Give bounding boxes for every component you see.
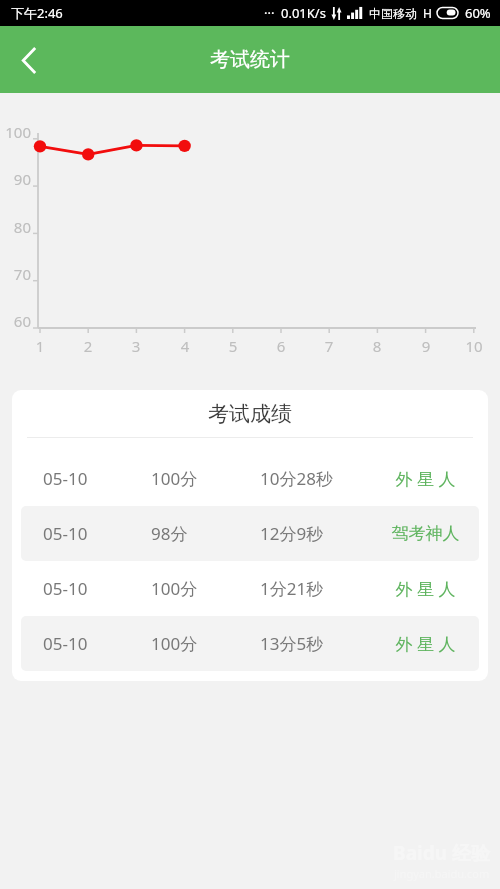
staticText: 10分28秒 [260,467,378,490]
staticText: 100分 [151,467,260,490]
staticText: 3 [121,336,151,356]
staticText: ··· [264,4,275,22]
staticText: 6 [266,336,296,356]
staticText: 1 [25,336,55,356]
staticText: 0.01K/s [281,4,326,22]
staticText: 考试成绩 [208,401,292,427]
button[interactable]: 05-10 [21,451,479,506]
staticText: 5 [218,336,248,356]
staticText: 05-10 [43,632,151,655]
staticText: 60 [0,311,31,331]
staticText: 9 [411,336,441,356]
staticText: 70 [0,264,31,284]
button[interactable]: 05-10 [21,506,479,561]
staticText: 驾考神人 [378,523,473,544]
staticText: 100分 [151,632,260,655]
staticText: 外 星 人 [378,467,473,490]
button[interactable]: Back [0,31,58,89]
staticText: 60% [465,4,491,22]
staticText: 100分 [151,577,260,600]
staticText: 4 [170,336,200,356]
staticText: 外 星 人 [378,577,473,600]
staticText: 80 [0,217,31,237]
staticText: 下午2:46 [11,4,63,22]
staticText: 90 [0,169,31,189]
staticText: 2 [73,336,103,356]
staticText: 12分9秒 [260,522,378,545]
staticText: 外 星 人 [378,632,473,655]
button[interactable]: 05-10 [21,616,479,671]
staticText: 05-10 [43,577,151,600]
staticText: 1分21秒 [260,577,378,600]
staticText: H [423,5,432,21]
staticText: 8 [362,336,392,356]
staticText: 05-10 [43,467,151,490]
staticText: 中国移动 [369,6,417,21]
button[interactable]: 05-10 [21,561,479,616]
staticText: 7 [314,336,344,356]
staticText: 13分5秒 [260,632,378,655]
staticText: 10 [459,336,489,356]
staticText: 05-10 [43,522,151,545]
staticText: 100 [0,122,31,142]
staticText: 考试统计 [210,47,290,72]
staticText: 98分 [151,522,260,545]
